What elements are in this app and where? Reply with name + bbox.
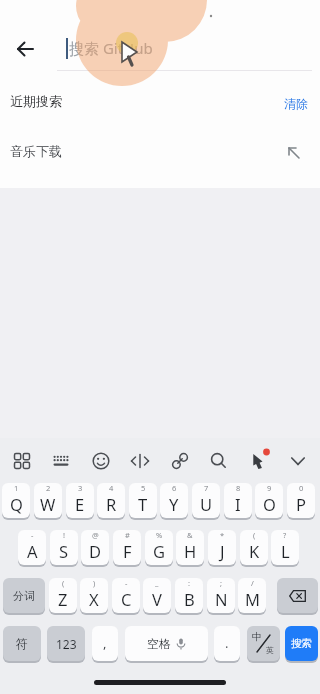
button[interactable]: @ bbox=[81, 530, 109, 565]
button[interactable]: ) bbox=[80, 578, 108, 613]
staticText: 近期搜索 bbox=[10, 93, 62, 109]
button[interactable]: 分词 bbox=[3, 578, 45, 613]
button[interactable]: 音乐下载 bbox=[0, 134, 320, 170]
button[interactable]: 5 bbox=[129, 483, 157, 518]
button[interactable]: 中 bbox=[247, 626, 280, 661]
staticText: 清除 bbox=[284, 96, 308, 111]
staticText: O bbox=[263, 493, 276, 515]
staticText: # bbox=[125, 530, 130, 540]
button[interactable]: ( bbox=[240, 530, 268, 565]
staticText: L bbox=[281, 540, 290, 562]
staticText: ( bbox=[253, 530, 256, 540]
staticText: X bbox=[89, 588, 99, 610]
button[interactable]: - bbox=[18, 530, 46, 565]
button[interactable] bbox=[6, 29, 44, 67]
staticText: ) bbox=[93, 578, 96, 588]
staticText: , bbox=[103, 634, 107, 652]
staticText: N bbox=[215, 588, 228, 610]
staticText: A bbox=[27, 540, 38, 562]
button[interactable]: 8 bbox=[224, 483, 252, 518]
button[interactable] bbox=[123, 444, 157, 478]
staticText: @ bbox=[92, 530, 99, 540]
button[interactable]: 搜索 bbox=[285, 626, 318, 661]
button[interactable]: ! bbox=[50, 530, 78, 565]
button[interactable]: 清除 bbox=[278, 90, 314, 116]
button[interactable] bbox=[84, 444, 118, 478]
button[interactable]: , bbox=[92, 626, 118, 661]
button[interactable]: & bbox=[176, 530, 204, 565]
button[interactable] bbox=[277, 578, 318, 613]
staticText: 中 bbox=[252, 630, 262, 643]
staticText: C bbox=[121, 588, 132, 610]
staticText: G bbox=[153, 540, 166, 562]
button[interactable]: . bbox=[214, 626, 240, 661]
button[interactable]: 3 bbox=[66, 483, 94, 518]
button[interactable]: : bbox=[175, 578, 203, 613]
button[interactable]: - bbox=[112, 578, 140, 613]
staticText: 分词 bbox=[13, 589, 35, 603]
staticText: B bbox=[184, 588, 195, 610]
staticText: & bbox=[187, 530, 193, 540]
staticText: H bbox=[184, 540, 197, 562]
button[interactable]: 0 bbox=[287, 483, 315, 518]
button[interactable]: ; bbox=[207, 578, 235, 613]
button[interactable]: 4 bbox=[97, 483, 125, 518]
staticText: S bbox=[59, 540, 69, 562]
staticText: - bbox=[125, 578, 128, 588]
button[interactable]: 空格 bbox=[125, 626, 208, 661]
staticText: F bbox=[123, 540, 132, 562]
staticText: ? bbox=[283, 530, 287, 540]
button[interactable]: ( bbox=[49, 578, 77, 613]
staticText: . bbox=[225, 634, 229, 652]
staticText: / bbox=[251, 578, 254, 588]
staticText: ! bbox=[63, 530, 66, 540]
staticText: D bbox=[89, 540, 102, 562]
staticText: ; bbox=[220, 578, 223, 588]
button[interactable] bbox=[281, 444, 315, 478]
button[interactable]: 2 bbox=[34, 483, 62, 518]
staticText: M bbox=[245, 588, 260, 610]
staticText: I bbox=[235, 493, 241, 515]
button[interactable]: ? bbox=[271, 530, 299, 565]
staticText: 0 bbox=[299, 483, 304, 493]
button[interactable]: / bbox=[238, 578, 266, 613]
staticText: 空格 bbox=[147, 636, 171, 651]
button[interactable] bbox=[202, 444, 236, 478]
staticText: U bbox=[200, 493, 213, 515]
staticText: 符 bbox=[16, 636, 28, 651]
staticText: R bbox=[106, 493, 117, 515]
staticText: 9 bbox=[267, 483, 272, 493]
button[interactable]: 6 bbox=[160, 483, 188, 518]
staticText: * bbox=[220, 530, 225, 540]
staticText: 4 bbox=[109, 483, 114, 493]
button[interactable]: 1 bbox=[2, 483, 30, 518]
staticText: 8 bbox=[236, 483, 241, 493]
staticText: 7 bbox=[204, 483, 209, 493]
staticText: 2 bbox=[46, 483, 51, 493]
staticText: V bbox=[152, 588, 162, 610]
staticText: T bbox=[138, 493, 148, 515]
button[interactable]: 7 bbox=[192, 483, 220, 518]
staticText: 6 bbox=[172, 483, 177, 493]
button[interactable]: 符 bbox=[3, 626, 41, 661]
button[interactable]: * bbox=[208, 530, 236, 565]
staticText: Q bbox=[10, 493, 23, 515]
button[interactable]: 9 bbox=[255, 483, 283, 518]
button[interactable]: % bbox=[145, 530, 173, 565]
staticText: : bbox=[188, 578, 191, 588]
button[interactable] bbox=[5, 444, 39, 478]
staticText: 英 bbox=[266, 645, 274, 655]
button[interactable]: 123 bbox=[47, 626, 85, 661]
staticText: 5 bbox=[141, 483, 146, 493]
staticText: J bbox=[220, 540, 225, 562]
button[interactable] bbox=[163, 444, 197, 478]
staticText: - bbox=[31, 530, 34, 540]
staticText: 搜索 bbox=[291, 637, 312, 650]
button[interactable] bbox=[242, 444, 276, 478]
staticText: P bbox=[296, 493, 306, 515]
button[interactable]: _ bbox=[143, 578, 171, 613]
staticText: 123 bbox=[56, 636, 77, 652]
staticText: E bbox=[75, 493, 85, 515]
button[interactable]: # bbox=[113, 530, 141, 565]
button[interactable] bbox=[44, 444, 78, 478]
